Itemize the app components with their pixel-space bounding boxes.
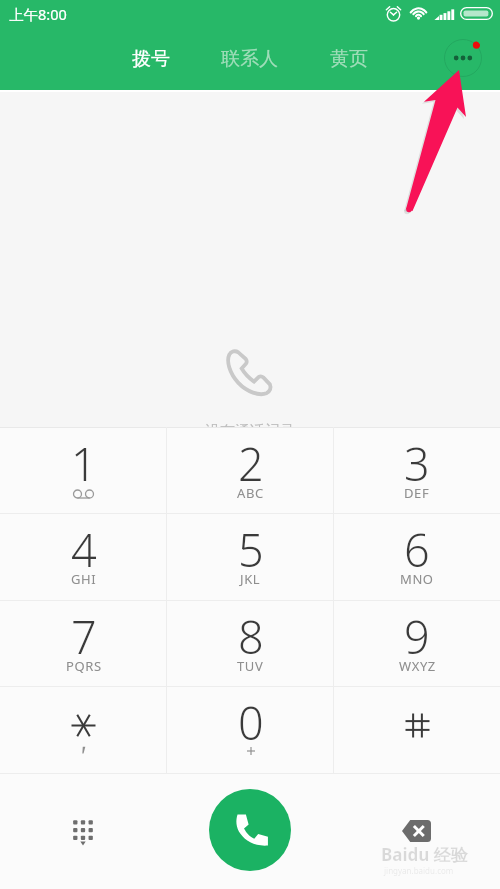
staticText: 7 bbox=[71, 606, 97, 667]
staticText: WXYZ bbox=[399, 657, 436, 675]
staticText: GHI bbox=[71, 570, 97, 588]
button[interactable]: 4 bbox=[0, 513, 167, 600]
button[interactable]: 8 bbox=[167, 600, 334, 686]
button[interactable]: 0 bbox=[167, 686, 334, 773]
staticText: 没有通话记录 bbox=[205, 422, 295, 441]
button[interactable]: 7 bbox=[0, 600, 167, 686]
button[interactable]: 5 bbox=[167, 513, 334, 600]
staticText: ABC bbox=[237, 484, 264, 502]
staticText: Baidu 经验 bbox=[381, 843, 468, 866]
staticText: 黄页 bbox=[330, 47, 368, 71]
staticText: 4 bbox=[71, 519, 97, 580]
staticText: JKL bbox=[240, 570, 261, 588]
staticText: DEF bbox=[404, 484, 430, 502]
button[interactable]: 2 bbox=[167, 427, 334, 513]
staticText: 5 bbox=[238, 519, 264, 580]
button[interactable]: 拨号 bbox=[101, 28, 200, 90]
button[interactable]: Call bbox=[209, 789, 291, 871]
button[interactable]: 1 bbox=[0, 427, 167, 513]
button[interactable]: star bbox=[0, 686, 167, 773]
button[interactable]: 黄页 bbox=[299, 28, 398, 90]
staticText: PQRS bbox=[66, 657, 102, 675]
staticText: 6 bbox=[404, 519, 430, 580]
staticText: 上午8:00 bbox=[9, 4, 67, 24]
staticText: 8 bbox=[238, 606, 264, 667]
button[interactable]: Hide keypad bbox=[58, 807, 108, 857]
staticText: 1 bbox=[71, 433, 97, 494]
button[interactable]: 3 bbox=[334, 427, 500, 513]
staticText: MNO bbox=[400, 570, 434, 588]
button[interactable]: Delete bbox=[391, 806, 441, 856]
button[interactable]: More options bbox=[441, 36, 485, 80]
button[interactable]: 6 bbox=[334, 513, 500, 600]
button[interactable]: 联系人 bbox=[200, 28, 299, 90]
staticText: 3 bbox=[404, 433, 430, 494]
button[interactable]: pound bbox=[334, 686, 500, 773]
staticText: 0 bbox=[238, 692, 264, 753]
staticText: 拨号 bbox=[132, 47, 170, 71]
staticText: 9 bbox=[404, 606, 430, 667]
button[interactable]: 9 bbox=[334, 600, 500, 686]
staticText: TUV bbox=[237, 657, 264, 675]
staticText: 2 bbox=[238, 433, 264, 494]
staticText: 联系人 bbox=[221, 47, 278, 71]
staticText: jingyan.baidu.com bbox=[384, 865, 454, 876]
